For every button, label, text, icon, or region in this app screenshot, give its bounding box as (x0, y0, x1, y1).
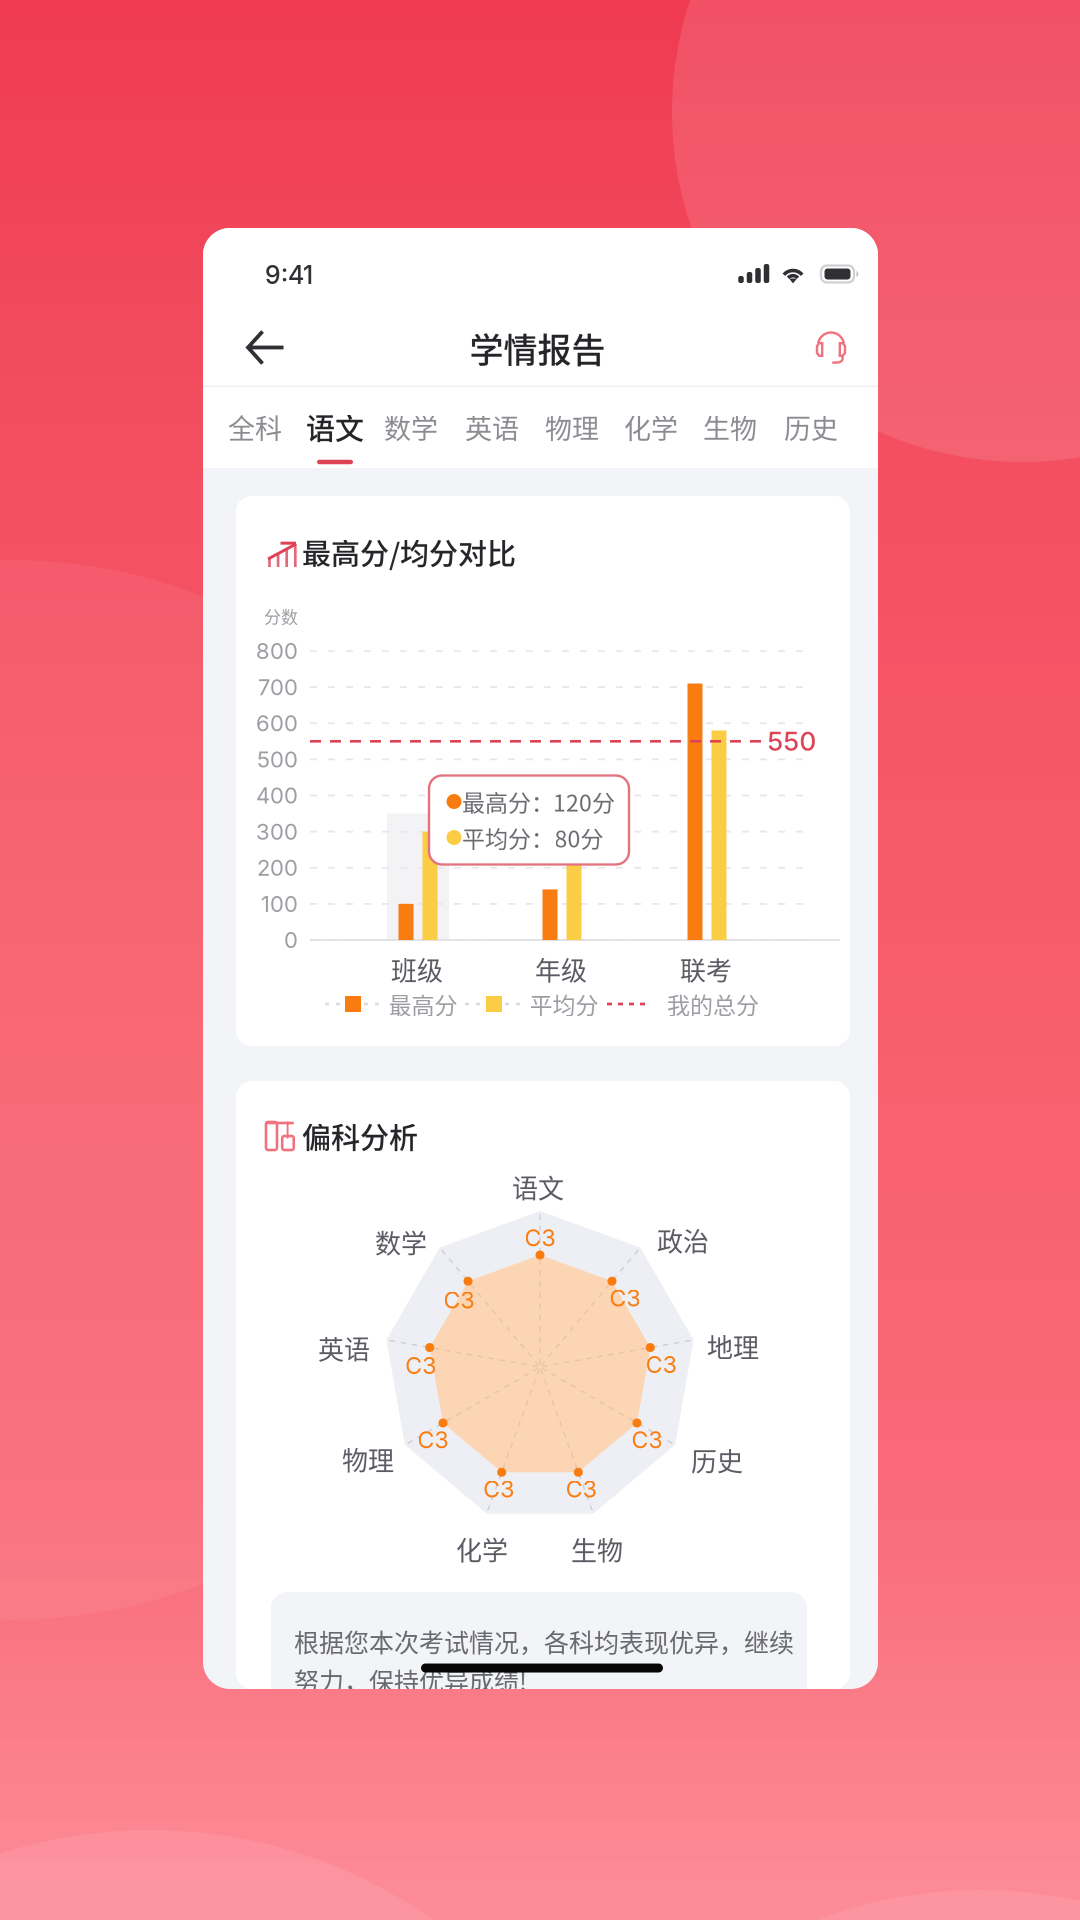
staticText: 联考 (680, 950, 732, 988)
button[interactable]: 化学 (612, 387, 690, 468)
staticText: 化学 (624, 407, 678, 447)
staticText: 地理 (707, 1327, 759, 1365)
staticText: 物理 (342, 1440, 394, 1478)
staticText: C3 (483, 1475, 514, 1503)
staticText: 学情报告 (469, 323, 605, 373)
staticText: 300 (256, 818, 298, 845)
staticText: C3 (646, 1351, 677, 1378)
button[interactable]: 历史 (772, 387, 850, 468)
staticText: 200 (257, 854, 298, 881)
staticText: C3 (609, 1284, 640, 1312)
staticText: 历史 (784, 407, 838, 447)
staticText: 最高分 (388, 987, 457, 1021)
staticText: 700 (258, 674, 298, 700)
button[interactable]: Customer service (792, 308, 870, 384)
staticText: 生物 (571, 1530, 623, 1568)
staticText: 80分 (554, 821, 603, 854)
staticText: 化学 (456, 1530, 508, 1568)
staticText: 英语 (318, 1329, 370, 1367)
staticText: 800 (256, 638, 298, 664)
button[interactable]: 物理 (533, 387, 611, 468)
staticText: 语文 (306, 406, 364, 448)
staticText: C3 (405, 1352, 436, 1379)
staticText: 最高分/均分对比 (302, 531, 516, 573)
staticText: 平均分： (462, 821, 554, 854)
staticText: C3 (631, 1426, 662, 1454)
staticText: C3 (443, 1286, 474, 1314)
staticText: 班级 (391, 950, 443, 988)
staticText: 偏科分析 (302, 1115, 418, 1157)
staticText: 550 (767, 726, 816, 757)
staticText: 最高分： (462, 785, 554, 818)
staticText: 全科 (228, 407, 282, 447)
staticText: 平均分 (529, 987, 598, 1021)
staticText: 100 (261, 891, 298, 917)
staticText: 语文 (512, 1168, 564, 1206)
staticText: 9:41 (265, 260, 313, 290)
staticText: C3 (524, 1224, 555, 1252)
staticText: 500 (257, 746, 298, 773)
staticText: 我的总分 (667, 987, 759, 1021)
staticText: 物理 (545, 407, 599, 447)
staticText: 历史 (691, 1441, 743, 1479)
staticText: 根据您本次考试情况，各科均表现优异，继续 (294, 1623, 794, 1659)
staticText: 400 (256, 782, 298, 809)
staticText: 分数 (264, 604, 298, 628)
button[interactable]: Back (227, 309, 305, 385)
staticText: 政治 (657, 1221, 709, 1259)
staticText: 数学 (375, 1223, 427, 1261)
button[interactable]: 英语 (453, 387, 531, 468)
staticText: 年级 (535, 950, 587, 988)
staticText: C3 (417, 1426, 448, 1454)
staticText: C3 (566, 1475, 597, 1503)
staticText: 英语 (465, 407, 519, 447)
staticText: 生物 (703, 407, 757, 447)
staticText: 600 (256, 710, 298, 736)
button[interactable]: 语文 (296, 387, 374, 468)
staticText: 120分 (553, 785, 615, 818)
button[interactable]: 数学 (372, 387, 450, 468)
staticText: 数学 (384, 407, 438, 447)
staticText: 努力，保持优异成绩! (294, 1662, 527, 1698)
staticText: 0 (284, 927, 298, 953)
button[interactable]: 全科 (216, 387, 294, 468)
button[interactable]: 生物 (691, 387, 769, 468)
